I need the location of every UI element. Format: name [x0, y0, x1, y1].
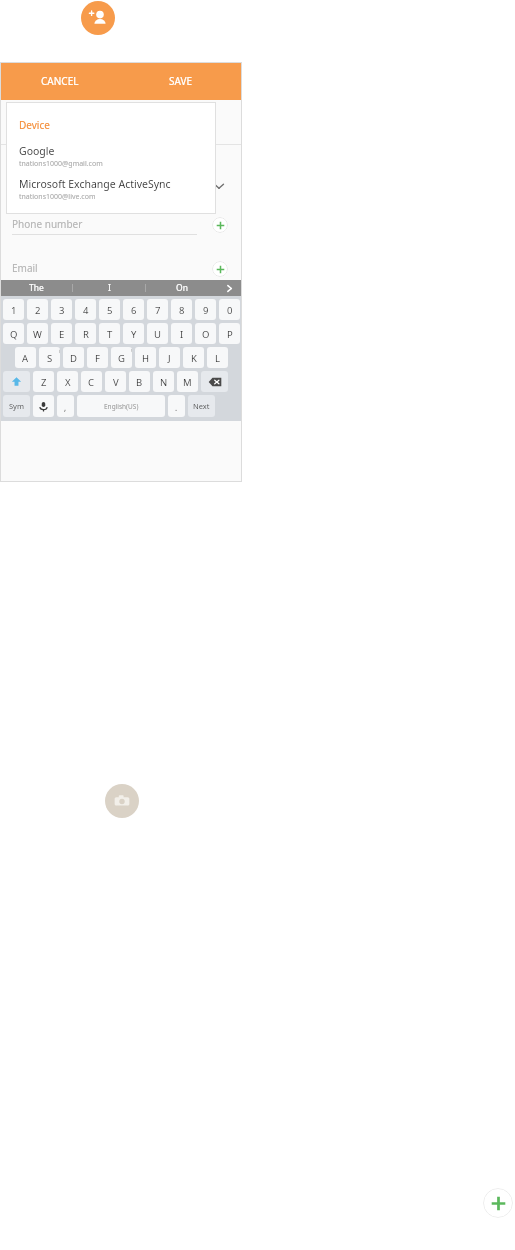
button[interactable]: 3 — [51, 299, 72, 320]
button[interactable]: - — [33, 371, 54, 392]
button[interactable]: / — [99, 323, 120, 344]
button[interactable]: ÷ — [51, 323, 72, 344]
button[interactable]: ' — [81, 371, 102, 392]
button[interactable]: > — [171, 323, 192, 344]
staticText: E — [59, 328, 65, 341]
staticText: 6 — [131, 304, 137, 317]
staticText: 4 — [83, 304, 89, 317]
staticText: R — [83, 328, 89, 341]
button[interactable]: ( — [183, 347, 204, 368]
button[interactable]: $ — [87, 347, 108, 368]
button[interactable]: Shift — [3, 371, 30, 392]
button[interactable]: Device — [6, 114, 216, 136]
button[interactable]: * — [159, 347, 180, 368]
staticText: B — [136, 376, 143, 389]
staticText: Next — [193, 401, 210, 411]
staticText: . — [175, 402, 178, 413]
staticText: @ — [59, 348, 60, 355]
staticText: H — [142, 352, 150, 365]
button[interactable]: Add Email — [212, 261, 228, 277]
button[interactable]: + — [3, 323, 24, 344]
button[interactable]: The — [0, 280, 72, 296]
staticText: Microsoft Exchange ActiveSync — [19, 177, 171, 191]
staticText: C — [88, 376, 95, 389]
staticText: tnations1000@gmail.com — [19, 159, 103, 169]
button[interactable]: 8 — [171, 299, 192, 320]
staticText: G — [118, 352, 125, 365]
staticText: tnations1000@live.com — [19, 192, 96, 202]
button[interactable]: ! — [15, 347, 36, 368]
staticText: 2 — [35, 304, 41, 317]
button[interactable]: Phone number — [0, 215, 242, 241]
staticText: S — [47, 352, 53, 365]
button[interactable]: # — [63, 347, 84, 368]
staticText: Sym — [9, 401, 24, 411]
button[interactable]: ? — [177, 371, 198, 392]
button[interactable]: 7 — [147, 299, 168, 320]
staticText: J — [168, 352, 171, 365]
staticText: Email — [12, 261, 38, 275]
staticText: W — [33, 328, 42, 341]
button[interactable]: Camera — [105, 784, 139, 818]
button[interactable]: 1 — [3, 299, 24, 320]
button[interactable]: 6 — [123, 299, 144, 320]
button[interactable]: Backspace — [201, 371, 228, 392]
staticText: 0 — [227, 304, 233, 317]
staticText: F — [95, 352, 100, 365]
button[interactable]: ) — [207, 347, 228, 368]
button[interactable]: = — [75, 323, 96, 344]
button[interactable]: ] — [219, 323, 240, 344]
button[interactable]: _ — [123, 323, 144, 344]
button[interactable]: On — [146, 280, 218, 296]
button[interactable]: × — [27, 323, 48, 344]
button[interactable]: : — [105, 371, 126, 392]
staticText: D — [70, 352, 77, 365]
button[interactable]: 5 — [99, 299, 120, 320]
button[interactable]: Add contact — [81, 1, 115, 35]
button[interactable]: Google — [6, 144, 216, 169]
staticText: 1 — [11, 304, 17, 317]
staticText: L — [215, 352, 220, 365]
staticText: T — [107, 328, 113, 341]
button[interactable]: More suggestions — [218, 280, 240, 296]
staticText: 8 — [179, 304, 185, 317]
staticText: 7 — [155, 304, 161, 317]
button[interactable]: Add — [483, 1188, 513, 1218]
button[interactable]: [ — [195, 323, 216, 344]
staticText: % — [131, 348, 132, 355]
button[interactable]: 2 — [27, 299, 48, 320]
button[interactable]: % — [111, 347, 132, 368]
button[interactable]: Microsoft Exchange ActiveSync — [6, 177, 216, 202]
button[interactable]: ? — [57, 395, 74, 417]
button[interactable]: " — [57, 371, 78, 392]
button[interactable]: I — [73, 280, 145, 296]
staticText: Phone number — [12, 217, 83, 231]
button[interactable]: , — [153, 371, 174, 392]
staticText: The — [29, 282, 44, 294]
staticText: X — [65, 376, 71, 389]
button[interactable]: CANCEL — [0, 62, 120, 100]
button[interactable]: @ — [39, 347, 60, 368]
staticText: I — [108, 282, 111, 294]
staticText: Y — [131, 328, 137, 341]
button[interactable]: Next — [188, 395, 215, 417]
staticText: K — [191, 352, 197, 365]
button[interactable]: . — [168, 395, 185, 417]
button[interactable]: Email — [0, 259, 242, 280]
button[interactable]: Voice input — [33, 395, 54, 417]
staticText: 5 — [107, 304, 113, 317]
button[interactable]: SAVE — [120, 62, 242, 100]
staticText: U — [154, 328, 161, 341]
staticText: CANCEL — [41, 74, 79, 88]
button[interactable]: 9 — [195, 299, 216, 320]
button[interactable]: 0 — [219, 299, 240, 320]
button[interactable]: < — [147, 323, 168, 344]
button[interactable]: English(US) — [77, 395, 165, 417]
staticText: P — [227, 328, 233, 341]
button[interactable]: Sym — [3, 395, 30, 417]
button[interactable]: Add Phone number — [212, 217, 228, 233]
staticText: English(US) — [104, 402, 139, 411]
button[interactable]: ; — [129, 371, 150, 392]
button[interactable]: & — [135, 347, 156, 368]
button[interactable]: 4 — [75, 299, 96, 320]
